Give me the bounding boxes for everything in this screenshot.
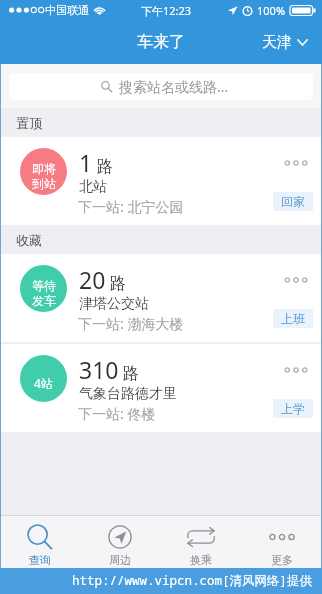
button[interactable]: 换乘: [160, 516, 241, 568]
button[interactable]: 更多: [281, 155, 311, 171]
staticText: 1: [79, 147, 93, 178]
button[interactable]: 等待: [0, 254, 322, 342]
staticText: 气象台路德才里: [79, 385, 177, 403]
button[interactable]: 回家: [273, 192, 313, 211]
staticText: 更多: [271, 553, 293, 567]
staticText: 等待: [32, 278, 56, 293]
button[interactable]: 天津: [262, 33, 308, 52]
staticText: 下一站: 佟楼: [78, 404, 156, 423]
staticText: 310: [79, 354, 119, 385]
button[interactable]: 更多: [281, 272, 311, 288]
staticText: 置顶: [16, 115, 42, 131]
staticText: 下午12:23: [141, 3, 192, 18]
staticText: 中国联通: [45, 3, 89, 17]
button[interactable]: 上学: [273, 399, 313, 418]
staticText: http://www.vipcn.com[清风网络]提供: [72, 572, 313, 589]
staticText: 上学: [281, 401, 305, 416]
staticText: 发车: [32, 293, 56, 308]
button[interactable]: 更多: [281, 362, 311, 378]
staticText: 上班: [281, 311, 305, 326]
staticText: 100%: [257, 3, 286, 18]
staticText: 北站: [79, 178, 107, 196]
staticText: 到站: [32, 176, 56, 191]
button[interactable]: 即将: [0, 137, 322, 225]
staticText: 天津: [262, 33, 292, 52]
button[interactable]: 4站: [0, 344, 322, 432]
staticText: 搜索站名或线路...: [119, 77, 229, 96]
staticText: 车来了: [137, 32, 185, 52]
staticText: 路: [123, 364, 139, 384]
staticText: 回家: [281, 194, 305, 209]
staticText: 津塔公交站: [79, 295, 149, 313]
staticText: 20: [79, 264, 106, 295]
staticText: 4站: [34, 375, 53, 391]
staticText: 收藏: [16, 232, 42, 248]
staticText: 下一站: 渤海大楼: [78, 314, 184, 333]
staticText: 周边: [109, 553, 131, 567]
button[interactable]: 查询: [0, 516, 80, 568]
staticText: 换乘: [190, 553, 212, 567]
staticText: 路: [97, 157, 113, 177]
staticText: 即将: [32, 161, 56, 176]
button[interactable]: 周边: [80, 516, 160, 568]
staticText: 下一站: 北宁公园: [78, 197, 184, 216]
button[interactable]: 搜索站名或线路...: [9, 73, 313, 100]
button[interactable]: 上班: [273, 309, 313, 328]
staticText: 路: [110, 274, 126, 294]
button[interactable]: 更多: [241, 516, 322, 568]
staticText: 查询: [29, 553, 51, 567]
